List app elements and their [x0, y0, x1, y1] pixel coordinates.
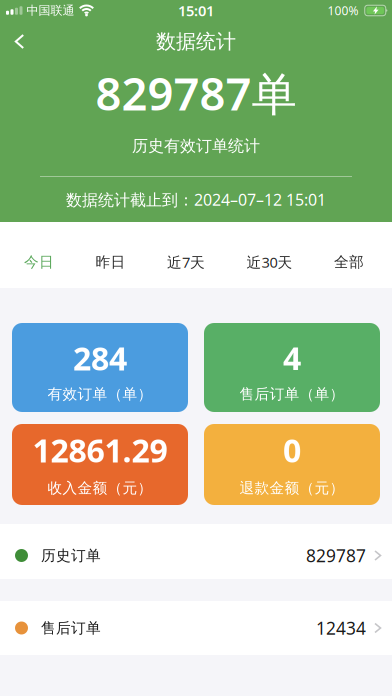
staticText: 售后订单（单） — [239, 385, 344, 403]
staticText: 数据统计 — [156, 29, 236, 54]
staticText: 4 — [283, 337, 301, 379]
button[interactable]: 历史订单 — [0, 524, 392, 579]
staticText: 829787单 — [95, 63, 296, 123]
staticText: 售后订单 — [41, 619, 101, 637]
button[interactable]: 近30天 — [246, 252, 292, 272]
staticText: 中国联通 — [26, 3, 74, 18]
staticText: 12861.29 — [32, 429, 167, 471]
button[interactable]: 近7天 — [167, 252, 205, 272]
staticText: 近30天 — [246, 252, 292, 272]
staticText: 有效订单（单） — [47, 385, 152, 403]
button[interactable]: 全部 — [334, 253, 364, 271]
staticText: 退款金额（元） — [239, 479, 344, 497]
staticText: 数据统计截止到：2024–07–12 15:01 — [66, 189, 326, 210]
staticText: 全部 — [334, 253, 364, 271]
staticText: 收入金额（元） — [47, 479, 152, 497]
staticText: 829787 — [306, 544, 366, 567]
staticText: 15:01 — [178, 1, 214, 20]
staticText: 12434 — [316, 616, 366, 639]
staticText: 近7天 — [167, 252, 205, 272]
button[interactable]: 售后订单 — [0, 601, 392, 655]
staticText: 昨日 — [95, 253, 125, 271]
staticText: 今日 — [24, 253, 54, 271]
staticText: 284 — [73, 337, 127, 379]
staticText: 历史有效订单统计 — [132, 136, 260, 156]
button[interactable]: 昨日 — [95, 253, 125, 271]
staticText: 0 — [283, 429, 301, 471]
staticText: 100% — [327, 2, 358, 18]
button[interactable] — [0, 34, 25, 49]
button[interactable]: 今日 — [24, 253, 54, 271]
staticText: 历史订单 — [41, 546, 101, 564]
